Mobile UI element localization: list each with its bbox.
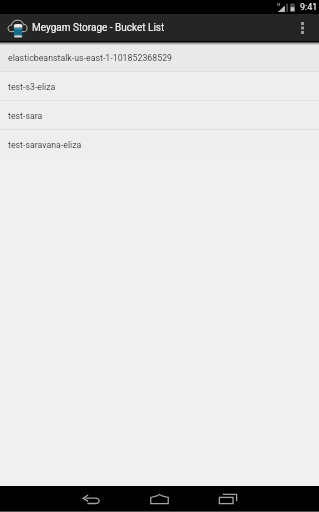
staticText: test-sara — [8, 111, 43, 121]
staticText: test-s3-eliza — [8, 82, 56, 92]
staticText: Meygam Storage - Bucket List — [32, 22, 165, 34]
button[interactable]: test-sara — [0, 101, 319, 129]
button[interactable]: elasticbeanstalk-us-east-1-101852368529 — [0, 43, 319, 71]
staticText: elasticbeanstalk-us-east-1-101852368529 — [8, 53, 173, 63]
button[interactable]: test-s3-eliza — [0, 72, 319, 100]
button[interactable]: More options — [290, 14, 314, 41]
button[interactable]: Back — [68, 486, 114, 512]
button[interactable]: test-saravana-eliza — [0, 130, 319, 158]
staticText: 9:41 — [300, 2, 318, 13]
button[interactable]: Recent apps — [205, 486, 251, 512]
button[interactable]: Home — [136, 486, 182, 512]
staticText: test-saravana-eliza — [8, 140, 82, 150]
